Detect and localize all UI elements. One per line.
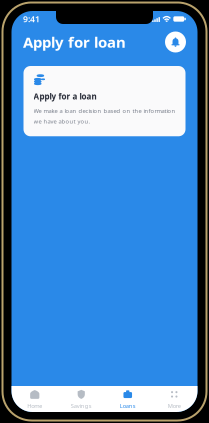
button[interactable]: Loans	[104, 383, 151, 415]
staticText: Loans	[120, 402, 136, 410]
button[interactable]: Savings	[58, 383, 104, 415]
staticText: We make a loan decision based on the inf…	[33, 107, 175, 125]
staticText: Home	[27, 402, 42, 410]
button[interactable]: Home	[11, 383, 58, 415]
staticText: More	[168, 402, 181, 410]
staticText: Apply for loan	[23, 32, 126, 52]
button[interactable]: More	[151, 383, 197, 415]
button[interactable]: Notifications	[165, 31, 186, 52]
staticText: Savings	[71, 402, 92, 410]
staticText: Apply for a loan	[33, 91, 96, 102]
staticText: 9:41	[23, 13, 40, 25]
button[interactable]: Apply for a loan	[23, 66, 185, 136]
